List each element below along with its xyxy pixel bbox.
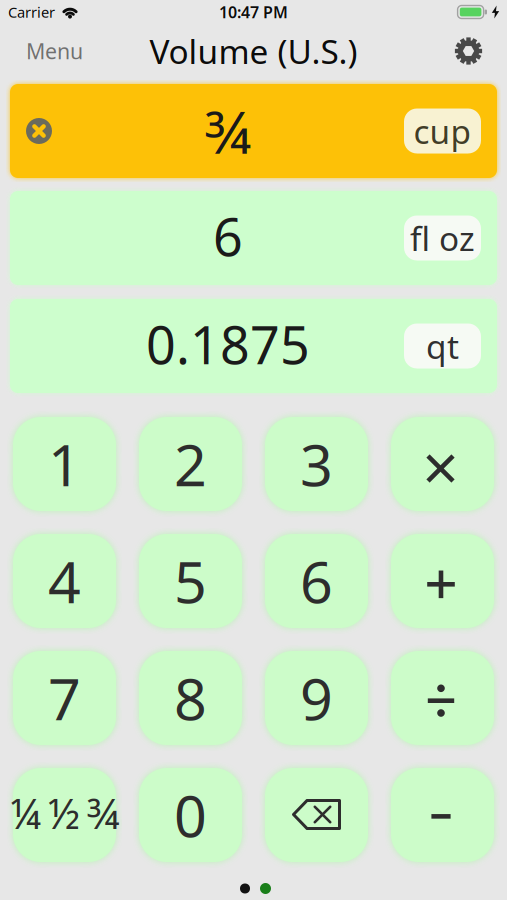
staticText: qt [426, 324, 459, 368]
staticText: Carrier [8, 2, 55, 22]
staticText: ¼ ½ ¾ [10, 786, 119, 840]
staticText: 0 [174, 777, 207, 853]
staticText: 6 [300, 543, 333, 619]
button[interactable]: Page 1 [240, 883, 250, 893]
staticText: cup [413, 109, 471, 153]
button[interactable]: Add [391, 534, 494, 628]
button[interactable]: 0 [139, 768, 242, 862]
button[interactable]: Menu [26, 37, 83, 65]
button[interactable]: 8 [139, 651, 242, 745]
button[interactable]: Clear [26, 118, 52, 144]
button[interactable]: 6 [265, 534, 368, 628]
button[interactable]: 4 [13, 534, 116, 628]
button[interactable]: Subtract [391, 768, 494, 862]
staticText: 4 [48, 543, 81, 619]
button[interactable]: fl oz [404, 215, 481, 260]
button[interactable]: 9 [265, 651, 368, 745]
staticText: Volume (U.S.) [149, 29, 357, 73]
staticText: Menu [26, 37, 83, 65]
button[interactable]: Settings [454, 36, 483, 65]
button[interactable]: 5 [139, 534, 242, 628]
button[interactable]: qt [404, 323, 481, 368]
button[interactable]: 2 [139, 417, 242, 511]
staticText: 2 [174, 426, 207, 502]
button[interactable]: Divide [391, 651, 494, 745]
staticText: 0.1875 [146, 309, 310, 379]
button[interactable]: 3 [265, 417, 368, 511]
button[interactable]: cup [404, 108, 481, 153]
staticText: ¾ [205, 92, 251, 170]
staticText: 9 [300, 660, 333, 736]
staticText: 10:47 PM [219, 1, 288, 23]
button[interactable]: Multiply [391, 417, 494, 511]
button[interactable]: Delete [265, 768, 368, 862]
button[interactable]: 7 [13, 651, 116, 745]
staticText: 7 [48, 660, 81, 736]
staticText: 5 [174, 543, 207, 619]
button[interactable]: 1 [13, 417, 116, 511]
button[interactable]: Page 2 [260, 883, 271, 894]
button[interactable]: ¼ ½ ¾ [13, 768, 116, 862]
staticText: 1 [48, 426, 81, 502]
staticText: fl oz [410, 216, 475, 260]
staticText: 3 [300, 426, 333, 502]
staticText: 8 [174, 660, 207, 736]
staticText: 6 [213, 201, 243, 271]
